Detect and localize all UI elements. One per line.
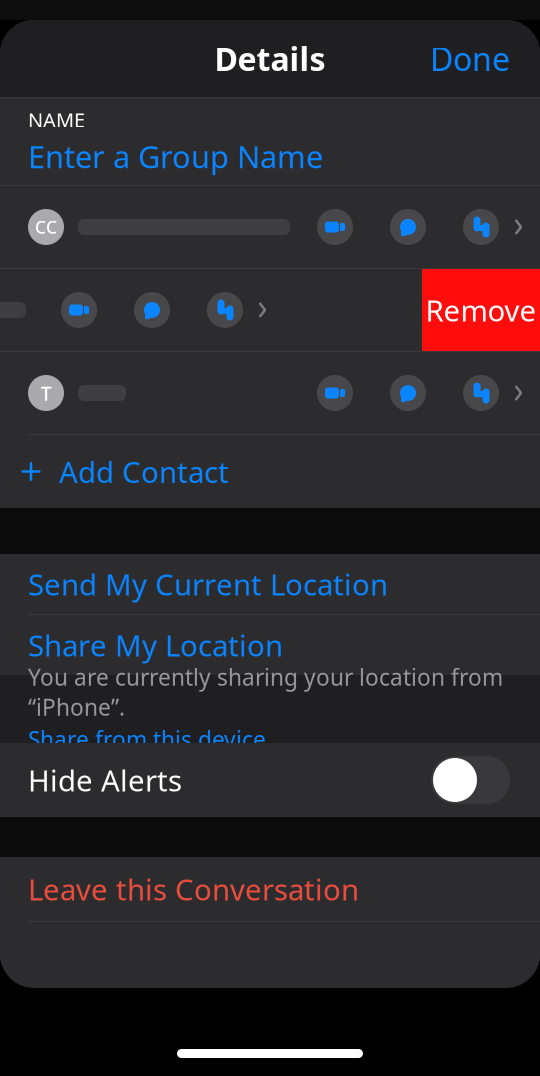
button[interactable]: Share My Location (0, 615, 540, 675)
button[interactable]: FaceTime (61, 292, 97, 328)
staticText: NAME (28, 106, 85, 133)
staticText: You are currently sharing your location … (28, 662, 503, 722)
button[interactable]: Done (412, 27, 528, 90)
button[interactable]: Leave this Conversation (0, 857, 540, 921)
button[interactable]: NAME (0, 98, 540, 185)
staticText: Enter a Group Name (28, 136, 323, 177)
button[interactable]: Hide Alerts (0, 743, 540, 817)
staticText: Done (430, 37, 510, 80)
staticText: Details (214, 37, 325, 80)
button[interactable]: Add Contact (0, 435, 540, 508)
button[interactable]: FaceTime (317, 209, 353, 245)
staticText: CC (35, 215, 57, 238)
button[interactable]: Message (390, 209, 426, 245)
button[interactable]: Message (134, 292, 170, 328)
staticText: T (40, 380, 51, 406)
staticText: Send My Current Location (28, 564, 388, 603)
staticText: Remove (425, 290, 536, 329)
staticText: Share from this device... (28, 724, 284, 754)
button[interactable]: Call (463, 209, 499, 245)
button[interactable]: T (0, 352, 540, 434)
staticText: Share My Location (28, 625, 283, 664)
staticText: Add Contact (59, 452, 229, 491)
button[interactable]: Send My Current Location (0, 554, 540, 614)
staticText: Hide Alerts (28, 760, 182, 799)
button[interactable]: Call (207, 292, 243, 328)
button[interactable]: CC (0, 186, 540, 268)
button[interactable]: Message (390, 375, 426, 411)
button[interactable] (0, 269, 402, 351)
button[interactable]: Remove (422, 269, 540, 351)
staticText: Leave this Conversation (28, 869, 359, 908)
button[interactable]: Call (463, 375, 499, 411)
button[interactable]: FaceTime (317, 375, 353, 411)
button[interactable]: Share from this device... (28, 724, 524, 754)
